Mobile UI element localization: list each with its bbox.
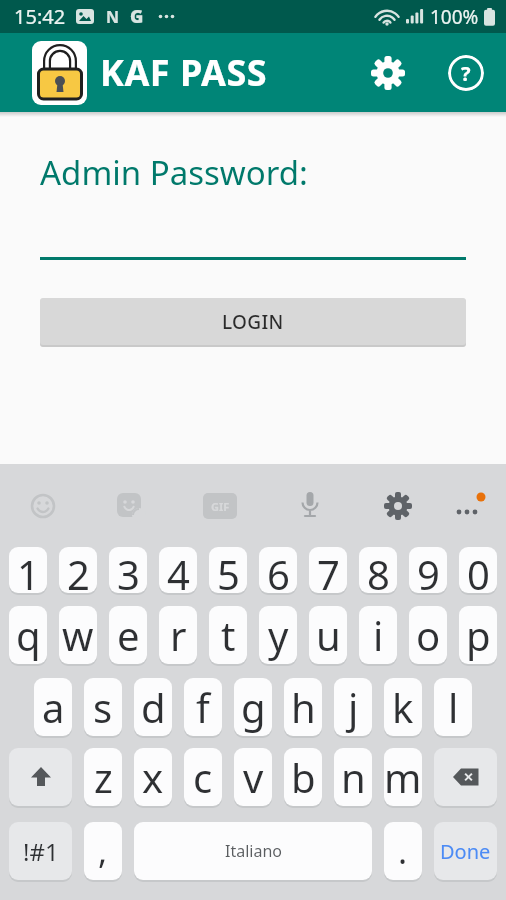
staticText: 1 (17, 547, 40, 593)
staticText: 15:42 (14, 3, 66, 30)
button[interactable]: 7 (309, 547, 347, 593)
button[interactable]: s (84, 678, 122, 736)
staticText: 9 (417, 547, 440, 593)
button[interactable]: x (134, 748, 172, 806)
button[interactable]: 0 (459, 547, 497, 593)
button[interactable]: !#1 (9, 822, 72, 880)
button[interactable]: Done (434, 822, 497, 880)
button[interactable]: i (359, 606, 397, 664)
button[interactable]: l (434, 678, 472, 736)
staticText: s (93, 680, 113, 734)
staticText: y (268, 608, 289, 662)
button[interactable]: a (34, 678, 72, 736)
staticText: 6 (267, 547, 290, 593)
button[interactable]: u (309, 606, 347, 664)
button[interactable]: o (409, 606, 447, 664)
staticText: u (316, 608, 341, 662)
staticText: 7 (317, 547, 340, 593)
staticText: o (416, 608, 441, 662)
button[interactable]: y (259, 606, 297, 664)
staticText: Italiano (225, 840, 282, 862)
staticText: p (466, 608, 491, 662)
staticText: b (291, 750, 316, 804)
button[interactable]: k (384, 678, 422, 736)
staticText: KAF PASS (100, 48, 268, 97)
button[interactable]: 4 (159, 547, 197, 593)
button[interactable] (368, 53, 408, 93)
staticText: l (448, 680, 459, 734)
button[interactable]: 6 (259, 547, 297, 593)
button[interactable]: 3 (109, 547, 147, 593)
staticText: m (384, 750, 422, 804)
staticText: x (142, 750, 164, 804)
staticText: 2 (67, 547, 90, 593)
staticText: Admin Password: (40, 150, 308, 195)
button[interactable] (434, 748, 497, 806)
staticText: 5 (217, 547, 240, 593)
staticText: 100% (430, 4, 479, 30)
staticText: GIF (211, 499, 230, 514)
button[interactable]: e (109, 606, 147, 664)
staticText: c (193, 750, 213, 804)
staticText: j (348, 680, 359, 734)
staticText: 4 (167, 547, 190, 593)
button[interactable]: j (334, 678, 372, 736)
staticText: , (98, 828, 108, 874)
staticText: 0 (467, 547, 490, 593)
staticText: ? (461, 60, 471, 87)
staticText: d (141, 680, 166, 734)
button[interactable]: Italiano (134, 822, 372, 880)
staticText: N (106, 6, 120, 28)
button[interactable]: . (384, 822, 422, 880)
button[interactable] (292, 488, 328, 524)
staticText: 8 (367, 547, 390, 593)
staticText: v (243, 750, 264, 804)
button[interactable]: f (184, 678, 222, 736)
button[interactable]: 5 (209, 547, 247, 593)
button[interactable]: 1 (9, 547, 47, 593)
button[interactable]: m (384, 748, 422, 806)
staticText: Done (440, 838, 491, 865)
button[interactable]: v (234, 748, 272, 806)
button[interactable]: 9 (409, 547, 447, 593)
staticText: g (241, 680, 266, 734)
button[interactable]: g (234, 678, 272, 736)
button[interactable] (380, 488, 416, 524)
staticText: i (373, 608, 384, 662)
button[interactable]: p (459, 606, 497, 664)
staticText: h (291, 680, 316, 734)
staticText: z (94, 750, 113, 804)
staticText: n (341, 750, 366, 804)
button[interactable]: d (134, 678, 172, 736)
button[interactable]: w (59, 606, 97, 664)
button[interactable]: 8 (359, 547, 397, 593)
staticText: G (130, 4, 144, 29)
staticText: !#1 (23, 835, 59, 868)
button[interactable]: n (334, 748, 372, 806)
button[interactable]: , (84, 822, 122, 880)
button[interactable]: r (159, 606, 197, 664)
button[interactable]: LOGIN (40, 298, 466, 345)
staticText: . (398, 828, 408, 874)
button[interactable]: 2 (59, 547, 97, 593)
button[interactable]: c (184, 748, 222, 806)
button[interactable]: ? (448, 55, 484, 91)
staticText: e (117, 608, 140, 662)
button[interactable]: t (209, 606, 247, 664)
button[interactable]: q (9, 606, 47, 664)
button[interactable] (112, 488, 148, 524)
button[interactable] (9, 748, 72, 806)
button[interactable]: GIF (203, 493, 237, 519)
button[interactable]: b (284, 748, 322, 806)
staticText: a (42, 680, 65, 734)
button[interactable]: h (284, 678, 322, 736)
button[interactable]: z (84, 748, 122, 806)
staticText: t (221, 608, 236, 662)
staticText: f (196, 680, 210, 734)
staticText: k (392, 680, 414, 734)
staticText: LOGIN (222, 309, 284, 335)
button[interactable] (447, 486, 487, 526)
button[interactable] (25, 488, 61, 524)
staticText: 3 (117, 547, 140, 593)
staticText: r (170, 608, 187, 662)
